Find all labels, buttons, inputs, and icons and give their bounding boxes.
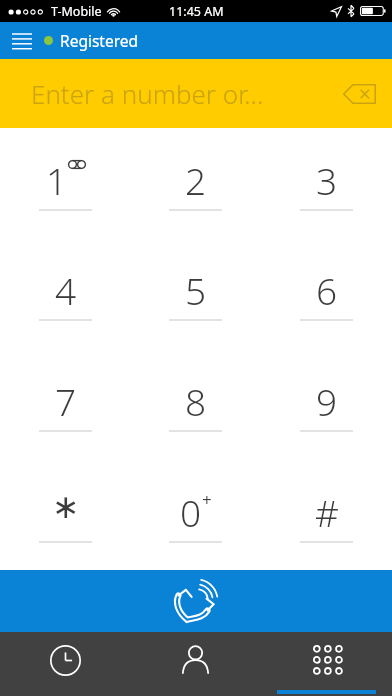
staticText: 4 xyxy=(55,265,77,311)
button[interactable]: Enter a number or... xyxy=(0,59,392,128)
staticText: ∗ xyxy=(52,487,80,525)
button[interactable]: 0 xyxy=(130,459,261,570)
staticText: 8 xyxy=(185,376,207,422)
button[interactable]: Call xyxy=(0,570,392,632)
button[interactable]: 9 xyxy=(261,348,392,459)
button[interactable]: 5 xyxy=(130,238,261,348)
button[interactable]: Contacts xyxy=(130,632,261,696)
staticText: Registered xyxy=(60,30,139,51)
button[interactable]: 2 xyxy=(130,128,261,238)
button[interactable]: # xyxy=(261,459,392,570)
staticText: 7 xyxy=(55,376,77,422)
button[interactable]: 7 xyxy=(0,348,130,459)
staticText: 5 xyxy=(185,265,207,311)
staticText: + xyxy=(202,488,212,511)
button[interactable]: Recents xyxy=(0,632,130,696)
button[interactable]: Menu xyxy=(0,22,44,59)
button[interactable]: 4 xyxy=(0,238,130,348)
button[interactable]: 1 xyxy=(0,128,130,238)
staticText: # xyxy=(315,487,339,533)
staticText: T-Mobile xyxy=(51,3,102,20)
staticText: 3 xyxy=(316,155,338,201)
button[interactable]: Keypad xyxy=(261,632,392,696)
button[interactable]: ∗ xyxy=(0,459,130,570)
button[interactable]: 6 xyxy=(261,238,392,348)
staticText: 9 xyxy=(316,376,338,422)
button[interactable]: 3 xyxy=(261,128,392,238)
staticText: 1 xyxy=(46,155,68,201)
staticText: 11:45 AM xyxy=(169,3,224,20)
button[interactable]: 8 xyxy=(130,348,261,459)
button[interactable]: Registered xyxy=(44,30,139,51)
staticText: Enter a number or... xyxy=(31,76,264,111)
staticText: 6 xyxy=(316,265,338,311)
staticText: 0 xyxy=(180,487,202,533)
staticText: 2 xyxy=(185,155,207,201)
button[interactable]: Backspace xyxy=(335,70,383,118)
